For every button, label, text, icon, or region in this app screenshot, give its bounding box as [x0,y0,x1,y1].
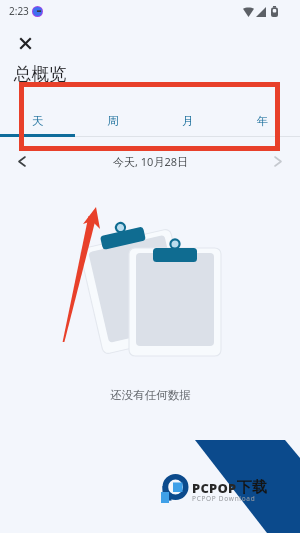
button[interactable]: 月 [150,100,225,134]
button[interactable]: Previous day [8,147,36,175]
staticText: 下载 [237,478,267,497]
staticText: PCPOP Download [192,494,256,503]
staticText: 今天, 10月28日 [113,154,188,169]
button[interactable]: 年 [225,100,300,134]
button[interactable]: Close [2,20,48,66]
staticText: 总概览 [14,63,67,85]
button[interactable]: Next day [264,147,292,175]
button[interactable]: 天 [0,100,75,134]
staticText: 还没有任何数据 [110,388,191,402]
staticText: 月 [182,114,194,128]
button[interactable]: 周 [75,100,150,134]
staticText: 周 [107,114,119,128]
staticText: PCPOP [192,479,237,497]
staticText: 年 [257,114,269,128]
staticText: 2:23 [9,4,29,18]
staticText: 天 [32,114,44,128]
